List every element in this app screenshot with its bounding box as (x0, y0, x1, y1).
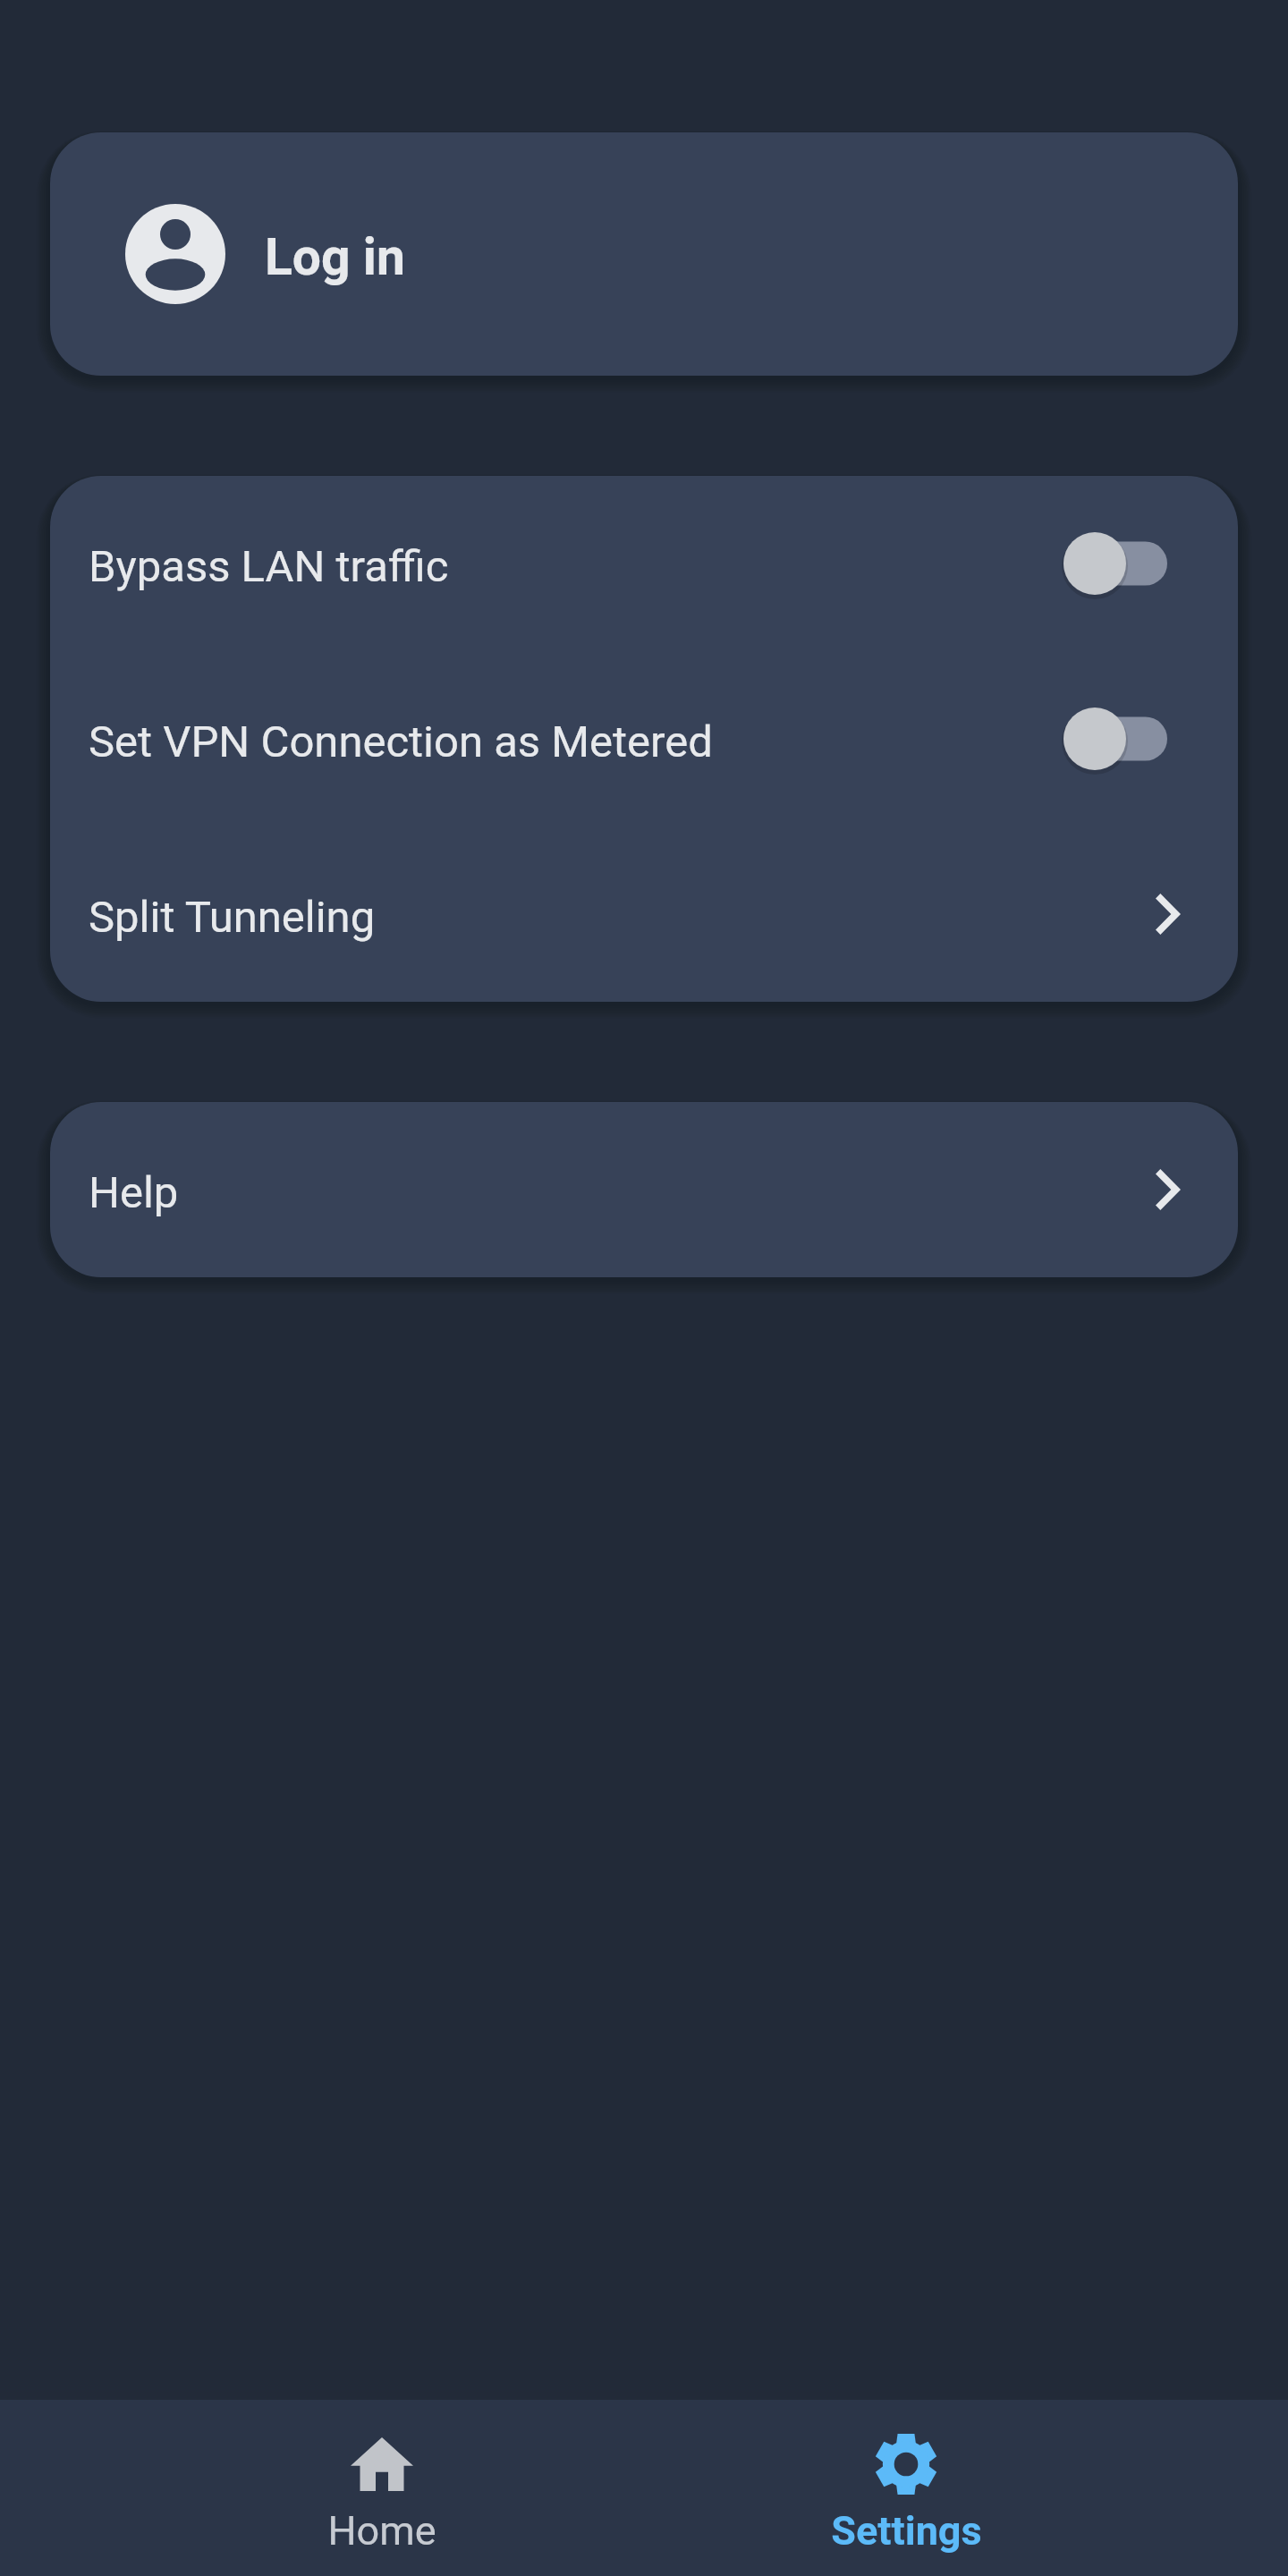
button[interactable]: Settings (644, 2400, 1168, 2576)
button[interactable]: Help (50, 1102, 1238, 1277)
other: Toggle off (1063, 708, 1167, 770)
button[interactable]: Split Tunneling (50, 826, 1238, 1002)
staticText: Help (89, 1167, 1156, 1218)
staticText: Log in (265, 227, 405, 287)
other: Account (125, 204, 225, 304)
other: Toggle off (1063, 532, 1167, 595)
other: Open (1156, 1169, 1181, 1210)
button[interactable]: Set VPN Connection as Metered (50, 651, 1238, 826)
staticText: Split Tunneling (89, 892, 1156, 943)
other: Open (1156, 894, 1181, 935)
staticText: Bypass LAN traffic (89, 541, 1063, 592)
button[interactable]: Home (120, 2400, 644, 2576)
staticText: Settings (831, 2507, 982, 2555)
button[interactable]: Bypass LAN traffic (50, 476, 1238, 651)
staticText: Home (327, 2507, 436, 2555)
button[interactable]: Account (50, 132, 1238, 376)
staticText: Set VPN Connection as Metered (89, 716, 1063, 767)
